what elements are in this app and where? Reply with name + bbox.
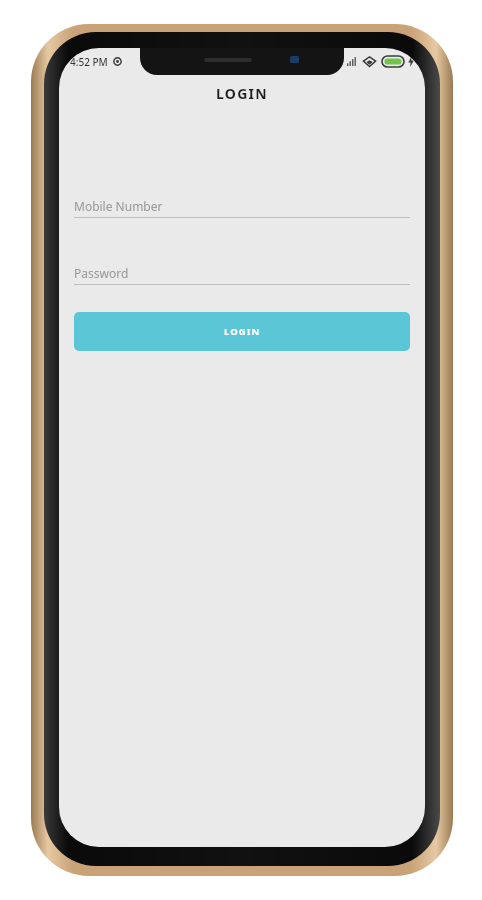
staticText: LOGIN (224, 325, 261, 338)
staticText: Password (74, 265, 129, 281)
staticText: 4:52 PM (70, 55, 108, 69)
staticText: Mobile Number (74, 198, 163, 214)
button[interactable]: Mobile Number (74, 195, 410, 218)
button[interactable]: Password (74, 262, 410, 285)
button[interactable]: LOGIN (74, 312, 410, 351)
staticText: LOGIN (74, 84, 410, 103)
other: Mobile signal (347, 57, 357, 66)
other: Wi-Fi (363, 56, 376, 67)
other: Battery (382, 56, 404, 67)
